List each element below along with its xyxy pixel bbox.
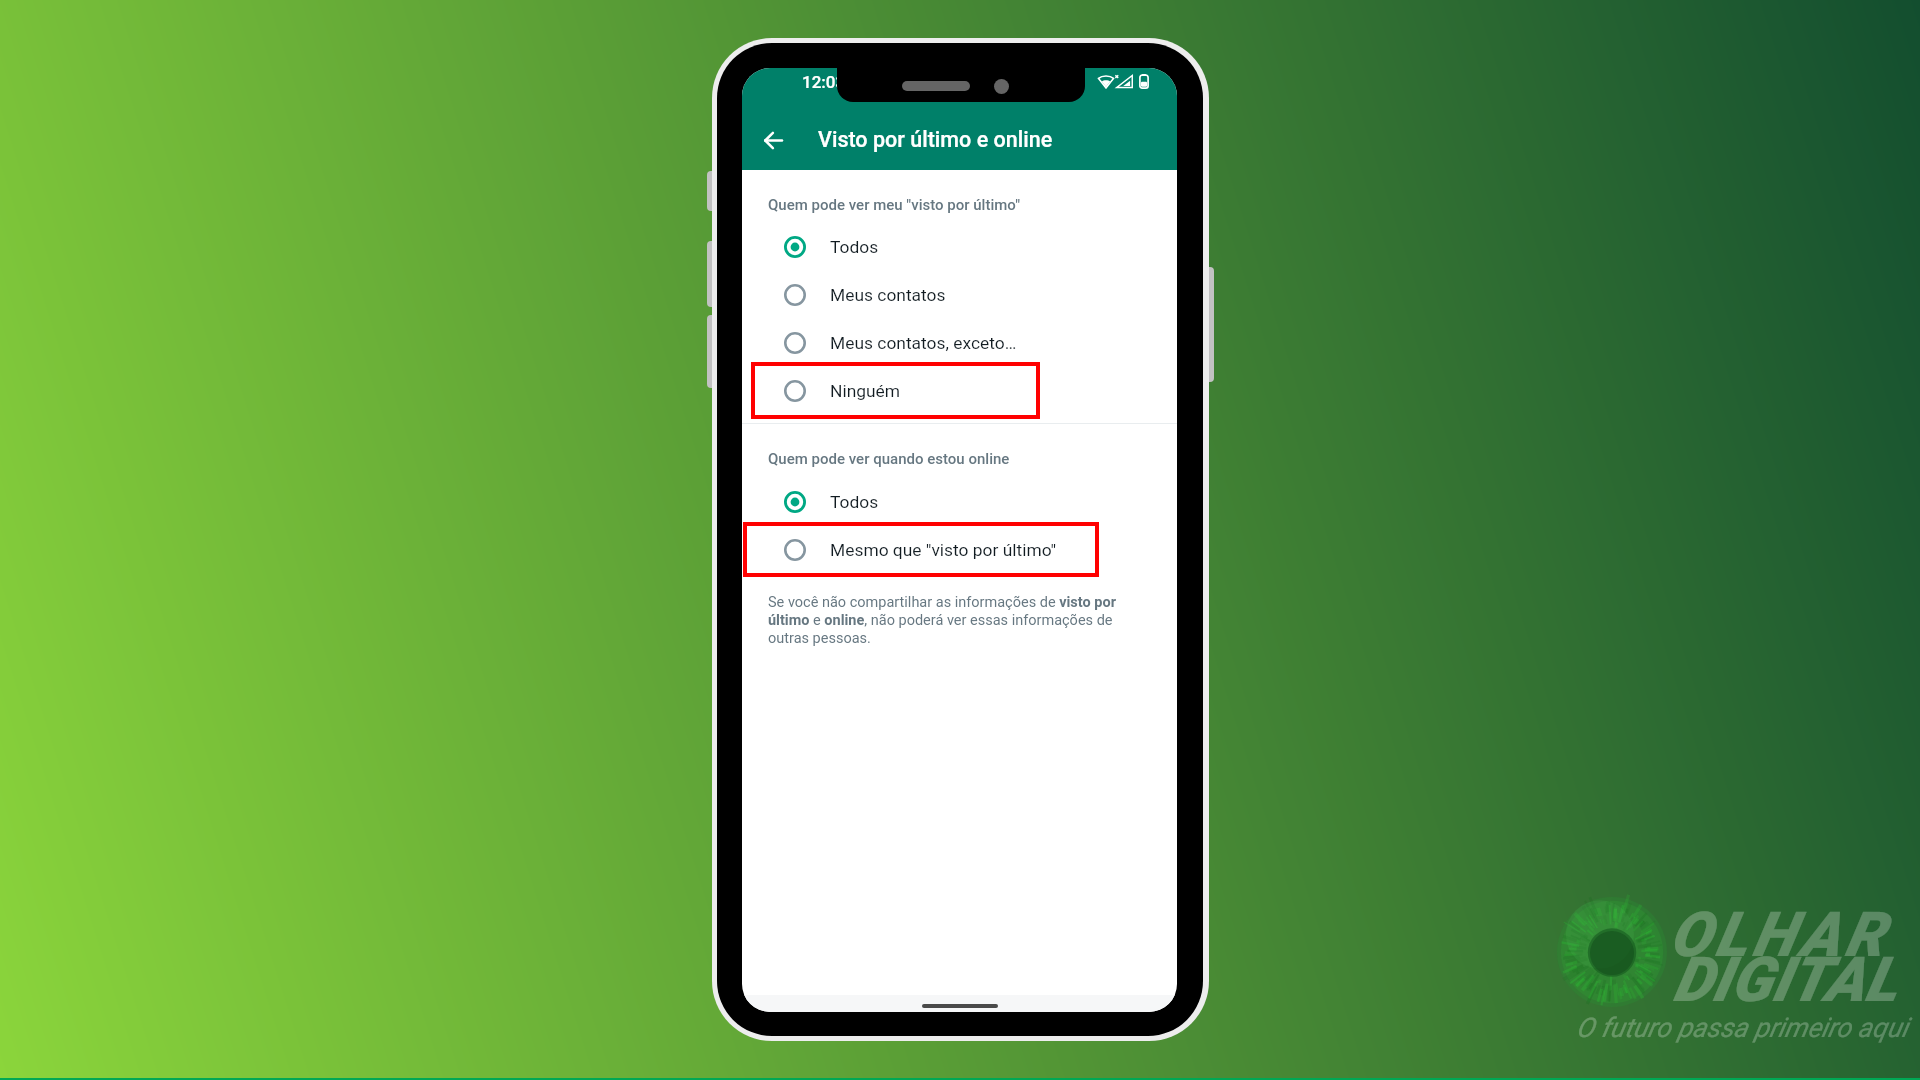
button[interactable]: Mesmo que "visto por último" (742, 526, 1177, 574)
staticText: Quem pode ver meu "visto por último" (768, 196, 1021, 214)
staticText: OLHAR (1669, 898, 1889, 971)
staticText: Ninguém (830, 381, 901, 401)
staticText: O futuro passa primeiro aqui (1576, 1012, 1908, 1044)
staticText: Todos (830, 492, 879, 512)
button[interactable]: Voltar (750, 117, 796, 163)
staticText: Todos (830, 237, 879, 257)
staticText: Se você não compartilhar as informações … (768, 594, 1135, 646)
staticText: Quem pode ver quando estou online (768, 450, 1010, 468)
staticText: Meus contatos (830, 285, 946, 305)
staticText: Mesmo que "visto por último" (830, 540, 1057, 560)
staticText: Visto por último e online (818, 127, 1053, 152)
staticText: Meus contatos, exceto… (830, 333, 1017, 353)
staticText: DIGITAL (1673, 943, 1898, 1016)
button[interactable]: Meus contatos (742, 271, 1177, 319)
staticText: 12:03 (802, 72, 846, 92)
button[interactable]: Ninguém (742, 367, 1177, 415)
button[interactable]: Todos (742, 223, 1177, 271)
button[interactable]: Meus contatos, exceto… (742, 319, 1177, 367)
button[interactable]: Todos (742, 478, 1177, 526)
